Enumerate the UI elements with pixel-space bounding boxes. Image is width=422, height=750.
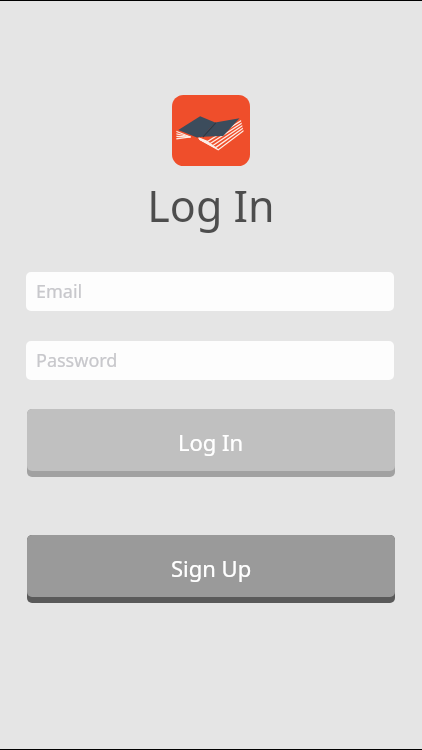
staticText: Log In: [0, 176, 422, 235]
staticText: Email: [36, 279, 83, 304]
staticText: Password: [36, 348, 118, 373]
staticText: Log In: [178, 427, 244, 457]
button[interactable]: Sign Up: [27, 535, 395, 603]
staticText: Sign Up: [171, 553, 252, 583]
button[interactable]: Password: [26, 341, 394, 380]
button[interactable]: Email: [26, 272, 394, 311]
button[interactable]: Log In: [27, 409, 395, 477]
